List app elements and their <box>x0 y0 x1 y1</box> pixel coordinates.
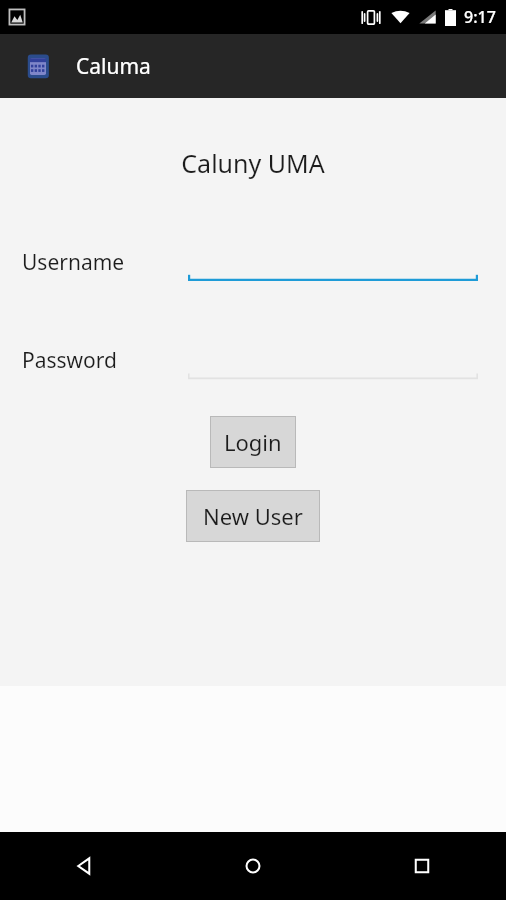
staticText: New User <box>203 501 303 531</box>
staticText: Caluma <box>76 52 151 81</box>
button[interactable]: Recents <box>337 832 506 900</box>
staticText: Caluny UMA <box>0 146 506 180</box>
button[interactable]: Back <box>0 832 168 900</box>
staticText: Login <box>224 427 282 457</box>
button[interactable]: Home <box>168 832 337 900</box>
button[interactable]: Login <box>210 416 296 468</box>
button[interactable]: Username input field <box>188 270 478 282</box>
staticText: Username <box>22 248 125 277</box>
button[interactable]: Password input field <box>188 368 478 380</box>
staticText: 9:17 <box>464 6 496 28</box>
button[interactable]: New User <box>186 490 320 542</box>
staticText: Password <box>22 346 117 375</box>
